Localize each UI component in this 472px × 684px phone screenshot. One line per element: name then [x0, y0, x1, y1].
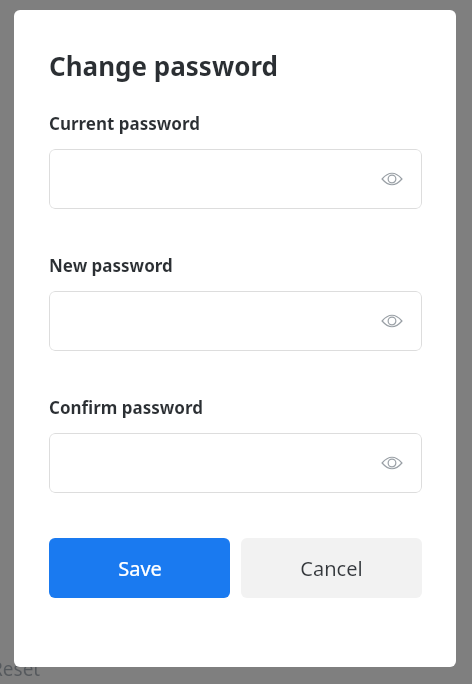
button[interactable]: Show password — [377, 448, 407, 478]
staticText: Save — [118, 555, 162, 582]
staticText: Reset — [0, 656, 41, 682]
staticText: Current password — [49, 112, 200, 135]
button[interactable]: Show password — [377, 306, 407, 336]
staticText: New password — [49, 254, 173, 277]
button[interactable]: Show password — [49, 433, 422, 493]
button[interactable]: Show password — [49, 149, 422, 209]
button[interactable]: Cancel — [241, 538, 422, 598]
button[interactable]: Show password — [49, 291, 422, 351]
button[interactable]: Save — [49, 538, 230, 598]
staticText: Change password — [49, 48, 278, 83]
staticText: Confirm password — [49, 396, 204, 419]
button[interactable]: Show password — [377, 164, 407, 194]
staticText: Cancel — [300, 555, 363, 582]
